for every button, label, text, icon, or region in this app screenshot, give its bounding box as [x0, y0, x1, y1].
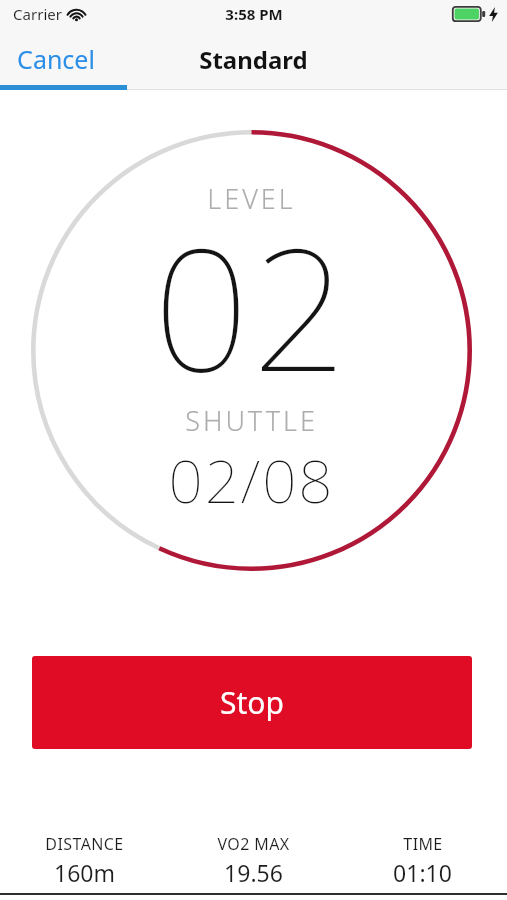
staticText: 01:10: [393, 857, 452, 888]
staticText: Stop: [220, 682, 284, 723]
staticText: VO2 MAX: [217, 833, 290, 855]
button[interactable]: VO2 MAX: [169, 833, 338, 888]
staticText: Standard: [199, 43, 308, 76]
button[interactable]: DISTANCE: [0, 833, 169, 888]
button[interactable]: Cancel: [0, 32, 112, 86]
staticText: 02/08: [168, 439, 335, 521]
staticText: 3:58 PM: [225, 4, 283, 24]
staticText: DISTANCE: [45, 833, 124, 855]
staticText: 160m: [54, 857, 115, 888]
staticText: SHUTTLE: [185, 402, 318, 439]
staticText: TIME: [403, 833, 443, 855]
staticText: 19.56: [224, 857, 283, 888]
button[interactable]: Stop: [32, 656, 472, 749]
staticText: Carrier: [13, 4, 62, 24]
staticText: LEVEL: [207, 180, 296, 217]
staticText: Cancel: [17, 42, 95, 76]
button[interactable]: TIME: [338, 833, 507, 888]
staticText: 02: [153, 191, 351, 420]
